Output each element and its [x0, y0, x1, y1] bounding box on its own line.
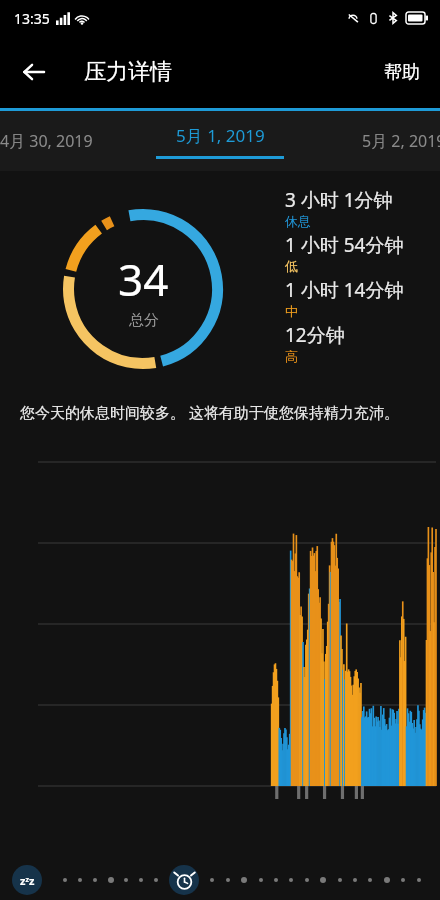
staticText: 总分 — [129, 311, 159, 330]
staticText: 3 小时 1分钟 — [285, 187, 393, 213]
button[interactable]: 返回 — [10, 48, 58, 96]
staticText: 34 — [118, 249, 169, 309]
staticText: 1 小时 14分钟 — [285, 277, 404, 303]
staticText: 压力详情 — [84, 58, 172, 86]
staticText: 高 — [285, 348, 298, 364]
button[interactable]: 5月 2, 2019 — [354, 130, 440, 152]
staticText: 5月 1, 2019 — [176, 124, 265, 147]
button[interactable]: 睡眠 — [12, 865, 42, 895]
button[interactable]: 帮助 — [370, 51, 434, 94]
staticText: 低 — [285, 258, 298, 274]
staticText: 13:35 — [14, 9, 50, 28]
staticText: zᶻz — [20, 873, 35, 888]
staticText: 您今天的休息时间较多。 这将有助于使您保持精力充沛。 — [20, 402, 399, 422]
button[interactable]: 5月 1, 2019 — [156, 124, 284, 159]
button[interactable]: 闹钟 — [169, 865, 199, 895]
staticText: 1 小时 54分钟 — [285, 232, 404, 258]
button[interactable]: 4月 30, 2019 — [0, 130, 101, 152]
staticText: 帮助 — [384, 61, 420, 84]
staticText: 中 — [285, 303, 298, 319]
staticText: 休息 — [285, 213, 311, 229]
staticText: 12分钟 — [285, 322, 345, 348]
